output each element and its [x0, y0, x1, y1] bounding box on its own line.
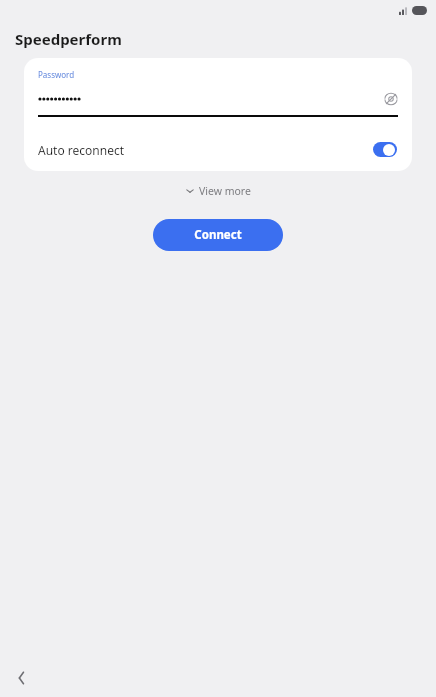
staticText: Speedperform — [15, 29, 122, 49]
button[interactable]: Connect — [153, 219, 283, 251]
staticText: Connect — [194, 227, 242, 243]
staticText: Auto reconnect — [38, 142, 124, 158]
staticText: Password — [38, 69, 75, 80]
button[interactable]: View more — [178, 181, 259, 201]
button[interactable]: Auto reconnect — [24, 131, 412, 168]
button[interactable]: Back — [8, 665, 34, 691]
button[interactable]: Show password — [380, 88, 402, 110]
staticText: View more — [199, 184, 251, 198]
button[interactable]: Auto reconnect toggle — [373, 142, 397, 157]
